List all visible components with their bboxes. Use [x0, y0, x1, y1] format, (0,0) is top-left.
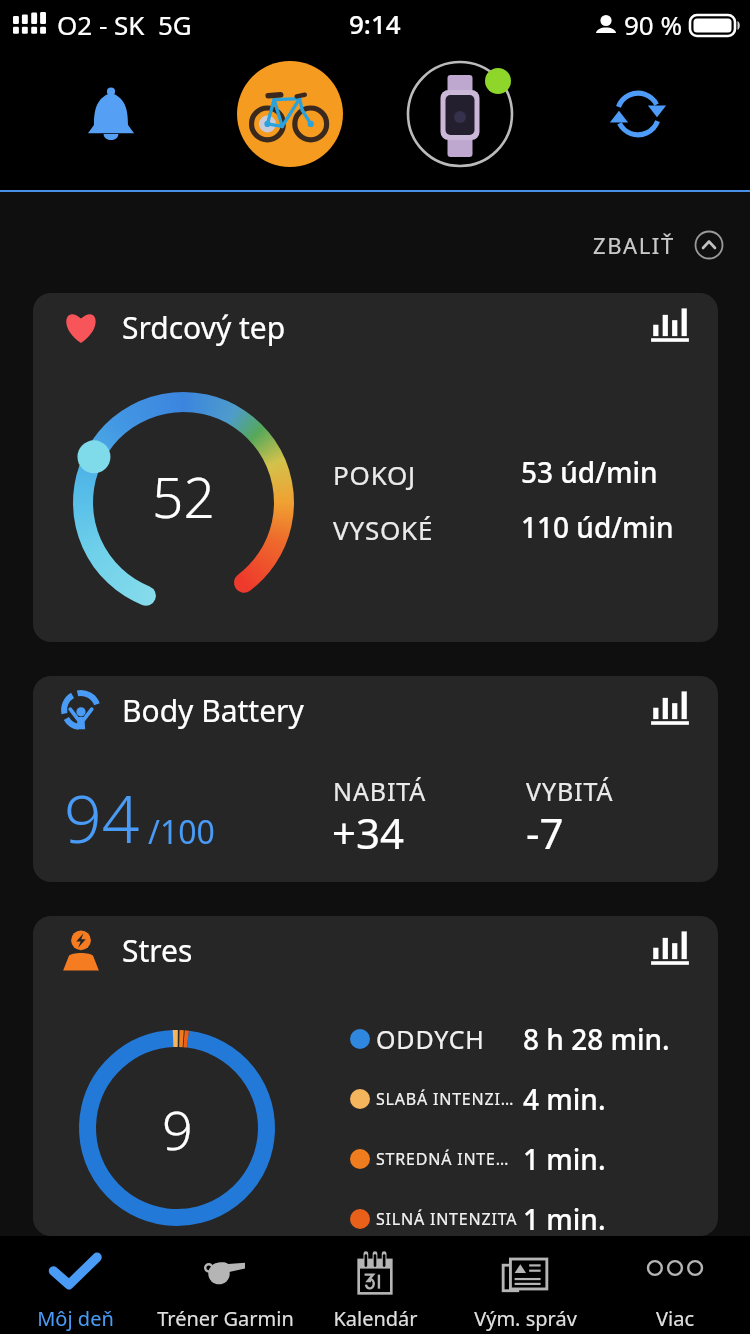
staticText: -7	[526, 804, 564, 861]
staticText: 8 h 28 min.	[523, 1020, 670, 1058]
button[interactable]: Connected device	[406, 60, 514, 168]
staticText: 1 min.	[523, 1140, 606, 1178]
button[interactable]: Cycling activity	[237, 61, 343, 167]
staticText: Stres	[122, 930, 193, 971]
staticText: Môj deň	[37, 1305, 114, 1332]
staticText: 52	[152, 459, 215, 534]
staticText: VYSOKÉ	[333, 512, 434, 547]
staticText: Srdcový tep	[122, 307, 286, 348]
button[interactable]: Môj deň	[0, 1236, 150, 1334]
staticText: 94	[64, 772, 140, 862]
staticText: SILNÁ INTENZITA	[376, 1208, 518, 1230]
button[interactable]: ZBALIŤ	[593, 219, 725, 271]
staticText: 90 %	[624, 7, 683, 42]
staticText: ZBALIŤ	[593, 230, 675, 260]
staticText: 9:14	[349, 6, 401, 41]
staticText: NABITÁ	[333, 774, 427, 808]
staticText: Viac	[656, 1305, 694, 1332]
staticText: STREDNÁ INTE…	[376, 1148, 510, 1170]
staticText: Body Battery	[122, 690, 304, 731]
staticText: SLABÁ INTENZI…	[376, 1088, 515, 1110]
button[interactable]: Vým. správ	[450, 1236, 600, 1334]
button[interactable]: Tréner Garmin	[150, 1236, 300, 1334]
button[interactable]: Kalendár	[300, 1236, 450, 1334]
staticText: O2 - SK 5G	[57, 7, 192, 42]
button[interactable]: Stres	[33, 916, 718, 1236]
button[interactable]: View chart	[642, 922, 698, 978]
staticText: /100	[148, 810, 215, 854]
button[interactable]: View chart	[642, 299, 698, 355]
staticText: Kalendár	[333, 1305, 418, 1332]
staticText: POKOJ	[333, 457, 417, 492]
button[interactable]: Srdcový tep	[33, 293, 718, 642]
staticText: 110 úd/min	[521, 508, 674, 546]
staticText: 9	[162, 1092, 193, 1166]
button[interactable]: Body Battery	[33, 676, 718, 882]
staticText: 4 min.	[523, 1080, 606, 1118]
staticText: Vým. správ	[474, 1305, 577, 1332]
staticText: 53 úd/min	[521, 453, 658, 491]
staticText: 1 min.	[523, 1200, 606, 1236]
staticText: +34	[332, 804, 405, 861]
staticText: Tréner Garmin	[157, 1305, 294, 1332]
button[interactable]: Sync	[592, 68, 684, 160]
staticText: ODDYCH	[376, 1022, 485, 1056]
button[interactable]: View chart	[642, 682, 698, 738]
button[interactable]: Viac	[600, 1236, 750, 1334]
staticText: VYBITÁ	[526, 774, 614, 808]
button[interactable]: Notifications	[65, 68, 157, 160]
